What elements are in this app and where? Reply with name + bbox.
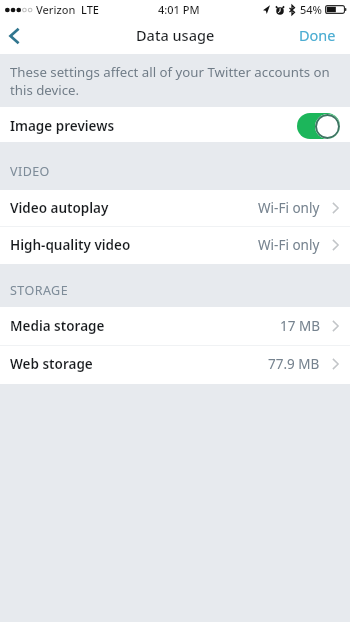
staticText: 17 MB [280, 317, 320, 335]
staticText: Done [299, 25, 336, 45]
button[interactable]: Media storage [0, 307, 350, 346]
button[interactable]: Web storage [0, 346, 350, 384]
staticText: LTE [81, 2, 99, 17]
staticText: High-quality video [10, 236, 131, 254]
staticText: STORAGE [10, 282, 69, 299]
staticText: Video autoplay [10, 199, 109, 217]
button[interactable]: High-quality video [0, 227, 350, 264]
staticText: 4:01 PM [158, 2, 200, 17]
staticText: Data usage [136, 25, 215, 45]
button[interactable]: Done [287, 20, 350, 54]
staticText: Web storage [10, 355, 93, 373]
staticText: VIDEO [10, 163, 50, 180]
staticText: These settings affect all of your Twitte… [10, 63, 342, 99]
staticText: Media storage [10, 317, 105, 335]
staticText: 77.9 MB [268, 355, 320, 373]
button[interactable]: Image previews toggle [297, 113, 340, 139]
staticText: Wi-Fi only [258, 236, 320, 254]
button[interactable]: Back [0, 20, 40, 54]
staticText: Wi-Fi only [258, 199, 320, 217]
staticText: 54% [300, 2, 322, 17]
button[interactable]: Video autoplay [0, 190, 350, 227]
button[interactable]: Image previews [0, 107, 350, 142]
staticText: Image previews [10, 117, 115, 135]
staticText: Verizon [36, 2, 76, 17]
